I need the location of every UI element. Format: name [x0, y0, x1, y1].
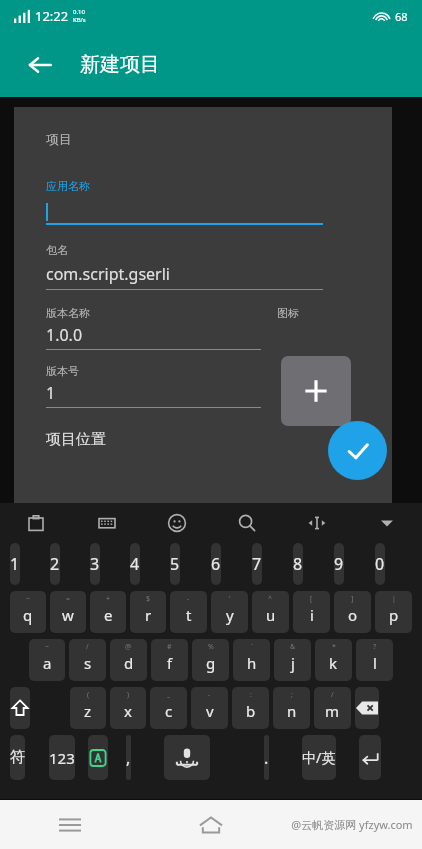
staticText: 6 — [211, 553, 221, 575]
staticText: / — [86, 642, 89, 652]
button[interactable]: 包名 — [46, 243, 323, 290]
button[interactable]: 123 — [49, 735, 75, 780]
button[interactable]: 8 — [293, 543, 303, 585]
button[interactable]: ) — [110, 687, 146, 729]
button[interactable] — [359, 735, 381, 780]
staticText: ( — [87, 690, 90, 700]
button[interactable]: 应用名称 — [46, 179, 323, 225]
button[interactable]: & — [274, 639, 311, 681]
button[interactable]: 6 — [211, 543, 221, 585]
button[interactable]: , — [126, 735, 131, 780]
button[interactable]: ; — [273, 687, 310, 729]
button[interactable]: ] — [334, 591, 371, 633]
button[interactable]: ~ — [10, 591, 46, 633]
staticText: ) — [127, 690, 130, 700]
button[interactable]: * — [315, 639, 352, 681]
staticText: h — [247, 653, 257, 673]
staticText: q — [23, 605, 33, 625]
button[interactable]: ~ — [29, 639, 65, 681]
button[interactable]: | — [375, 591, 412, 633]
staticText: KB/s — [73, 16, 86, 24]
staticText: n — [287, 701, 297, 721]
button[interactable]: ^ — [252, 591, 289, 633]
staticText: 新建项目 — [80, 52, 160, 77]
button[interactable]: [ — [293, 591, 330, 633]
button[interactable]: ' — [211, 591, 248, 633]
button[interactable]: 7 — [252, 543, 262, 585]
button[interactable]: 符 — [10, 735, 25, 780]
button[interactable]: 2 — [50, 543, 60, 585]
button[interactable]: ? — [356, 639, 393, 681]
button[interactable]: Confirm — [328, 421, 387, 480]
button[interactable]: / — [69, 639, 106, 681]
button[interactable]: : — [232, 687, 269, 729]
button[interactable]: ` — [233, 639, 270, 681]
button[interactable]: @ — [110, 639, 147, 681]
button[interactable]: . — [264, 735, 269, 780]
button[interactable]: Collapse — [352, 503, 422, 543]
button[interactable]: 版本名称 — [46, 306, 261, 350]
button[interactable]: 9 — [334, 543, 344, 585]
button[interactable]: 版本号 — [46, 364, 261, 408]
button[interactable] — [164, 735, 210, 780]
button[interactable]: = — [50, 591, 86, 633]
staticText: 中/英 — [302, 748, 336, 767]
staticText: ' — [229, 594, 231, 604]
button[interactable]: ( — [70, 687, 106, 729]
staticText: 12:22 — [35, 7, 69, 25]
staticText: @ — [125, 642, 132, 652]
staticText: + — [106, 594, 111, 604]
staticText: j — [291, 653, 295, 673]
button[interactable]: 5 — [170, 543, 180, 585]
button[interactable] — [355, 687, 379, 729]
staticText: / — [331, 690, 334, 700]
button[interactable]: Choose icon — [281, 356, 351, 426]
button[interactable] — [10, 687, 30, 729]
button[interactable]: Clipboard — [0, 503, 71, 543]
button[interactable]: _ — [150, 687, 187, 729]
button[interactable]: - — [191, 687, 228, 729]
staticText: = — [66, 594, 71, 604]
button[interactable]: - — [170, 591, 207, 633]
button[interactable]: Recent apps — [0, 800, 140, 849]
button[interactable]: Search — [212, 503, 282, 543]
button[interactable]: 0 — [375, 543, 385, 585]
button[interactable]: / — [314, 687, 351, 729]
staticText: z — [84, 701, 92, 721]
button[interactable]: 3 — [90, 543, 100, 585]
staticText: t — [186, 605, 192, 625]
staticText: % — [208, 642, 214, 652]
button[interactable]: Emoji — [142, 503, 212, 543]
staticText: u — [266, 605, 276, 625]
button[interactable]: % — [192, 639, 229, 681]
staticText: m — [325, 701, 340, 721]
staticText: ` — [251, 642, 253, 652]
button[interactable]: Cursor — [282, 503, 352, 543]
button[interactable]: Back — [20, 45, 60, 85]
staticText: i — [310, 605, 314, 625]
button[interactable]: + — [90, 591, 126, 633]
staticText: 包名 — [46, 243, 68, 257]
staticText: - — [187, 594, 190, 604]
button[interactable]: $ — [130, 591, 166, 633]
button[interactable]: 中/英 — [302, 735, 336, 780]
staticText: 68 — [395, 9, 408, 24]
button[interactable] — [88, 735, 108, 780]
staticText: _ — [167, 690, 171, 700]
staticText: . — [264, 747, 269, 769]
staticText: s — [84, 653, 92, 673]
staticText: 1 — [46, 382, 56, 404]
staticText: @云帆资源网 yfzyw.com — [291, 817, 413, 832]
staticText: c — [165, 701, 173, 721]
staticText: ^ — [268, 594, 273, 604]
button[interactable]: 1 — [10, 543, 20, 585]
staticText: a — [43, 653, 52, 673]
button[interactable]: 4 — [130, 543, 140, 585]
button[interactable]: Back — [281, 800, 422, 849]
staticText: 9 — [334, 553, 344, 575]
staticText: 0 — [375, 553, 385, 575]
staticText: [ — [310, 594, 313, 604]
button[interactable]: Home — [140, 800, 281, 849]
button[interactable]: # — [151, 639, 188, 681]
button[interactable]: Keyboard — [71, 503, 142, 543]
